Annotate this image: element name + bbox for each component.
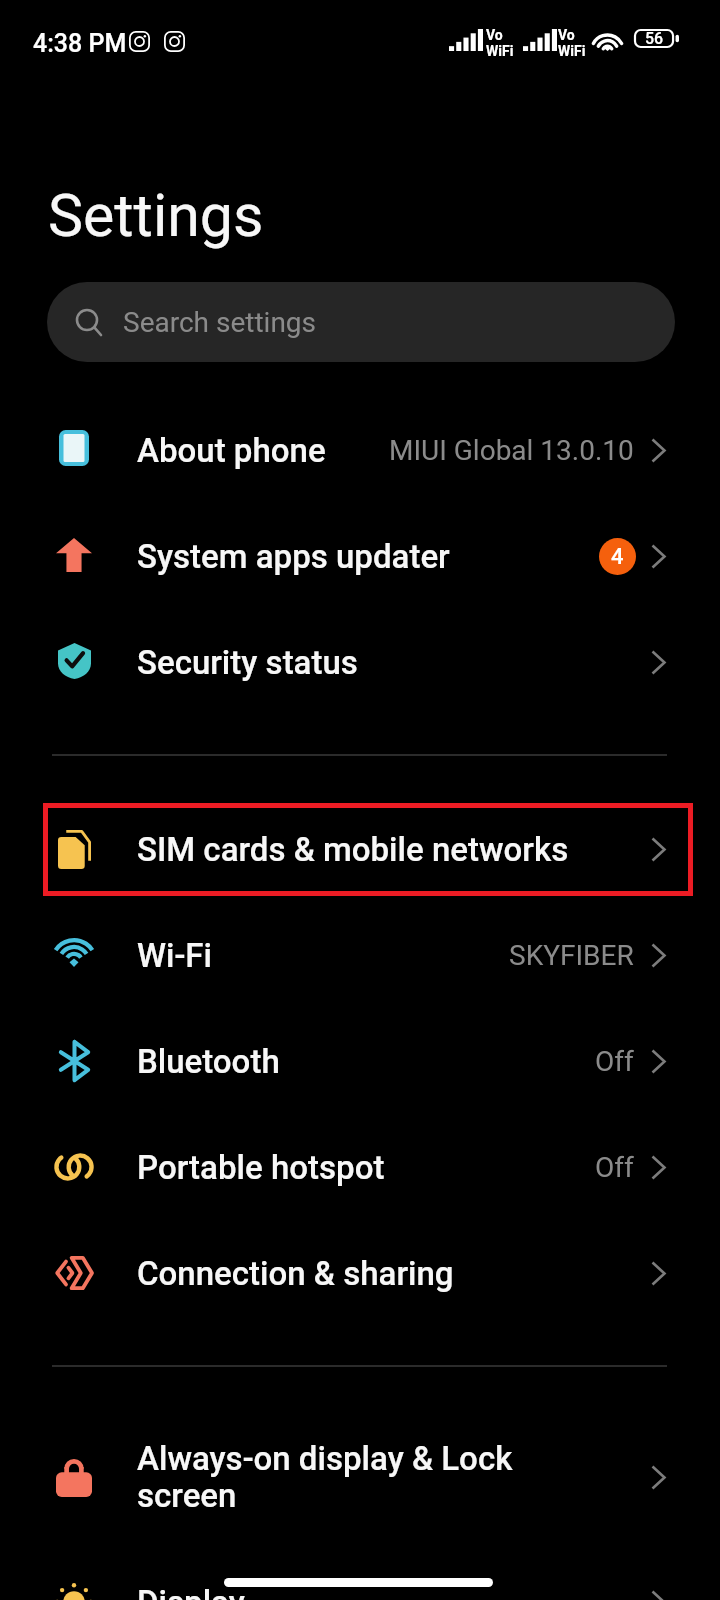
staticText: Display: [137, 1583, 245, 1600]
staticText: Settings: [48, 181, 264, 250]
staticText: Connection & sharing: [137, 1254, 454, 1293]
staticText: Vo: [486, 27, 503, 43]
staticText: Wi-Fi: [137, 936, 212, 975]
staticText: Off: [595, 1045, 634, 1078]
staticText: Search settings: [123, 306, 317, 339]
staticText: MIUI Global 13.0.10: [389, 434, 634, 467]
staticText: WiFi: [558, 43, 586, 59]
button[interactable]: Always-on display & Lock screen: [0, 1426, 720, 1528]
staticText: SIM cards & mobile networks: [137, 830, 569, 869]
staticText: SKYFIBER: [509, 939, 634, 972]
button[interactable]: Connection & sharing: [0, 1222, 720, 1324]
staticText: Vo: [558, 27, 575, 43]
button[interactable]: About phone: [0, 399, 720, 501]
button[interactable]: Display: [0, 1551, 720, 1600]
staticText: Bluetooth: [137, 1042, 280, 1081]
button[interactable]: SIM cards & mobile networks: [0, 798, 720, 900]
staticText: About phone: [137, 431, 326, 470]
button[interactable]: Bluetooth: [0, 1010, 720, 1112]
staticText: 56: [645, 29, 664, 48]
staticText: Always-on display & Lock screen: [137, 1439, 513, 1515]
staticText: Portable hotspot: [137, 1148, 385, 1187]
button[interactable]: Wi-Fi: [0, 904, 720, 1006]
staticText: Off: [595, 1151, 634, 1184]
button[interactable]: Security status: [0, 611, 720, 713]
staticText: 4: [611, 544, 624, 570]
staticText: 4:38 PM: [33, 29, 127, 58]
staticText: System apps updater: [137, 537, 450, 576]
staticText: Security status: [137, 643, 358, 682]
staticText: WiFi: [486, 43, 514, 59]
button[interactable]: Portable hotspot: [0, 1116, 720, 1218]
button[interactable]: System apps updater: [0, 505, 720, 607]
button[interactable]: Search settings: [47, 282, 675, 362]
